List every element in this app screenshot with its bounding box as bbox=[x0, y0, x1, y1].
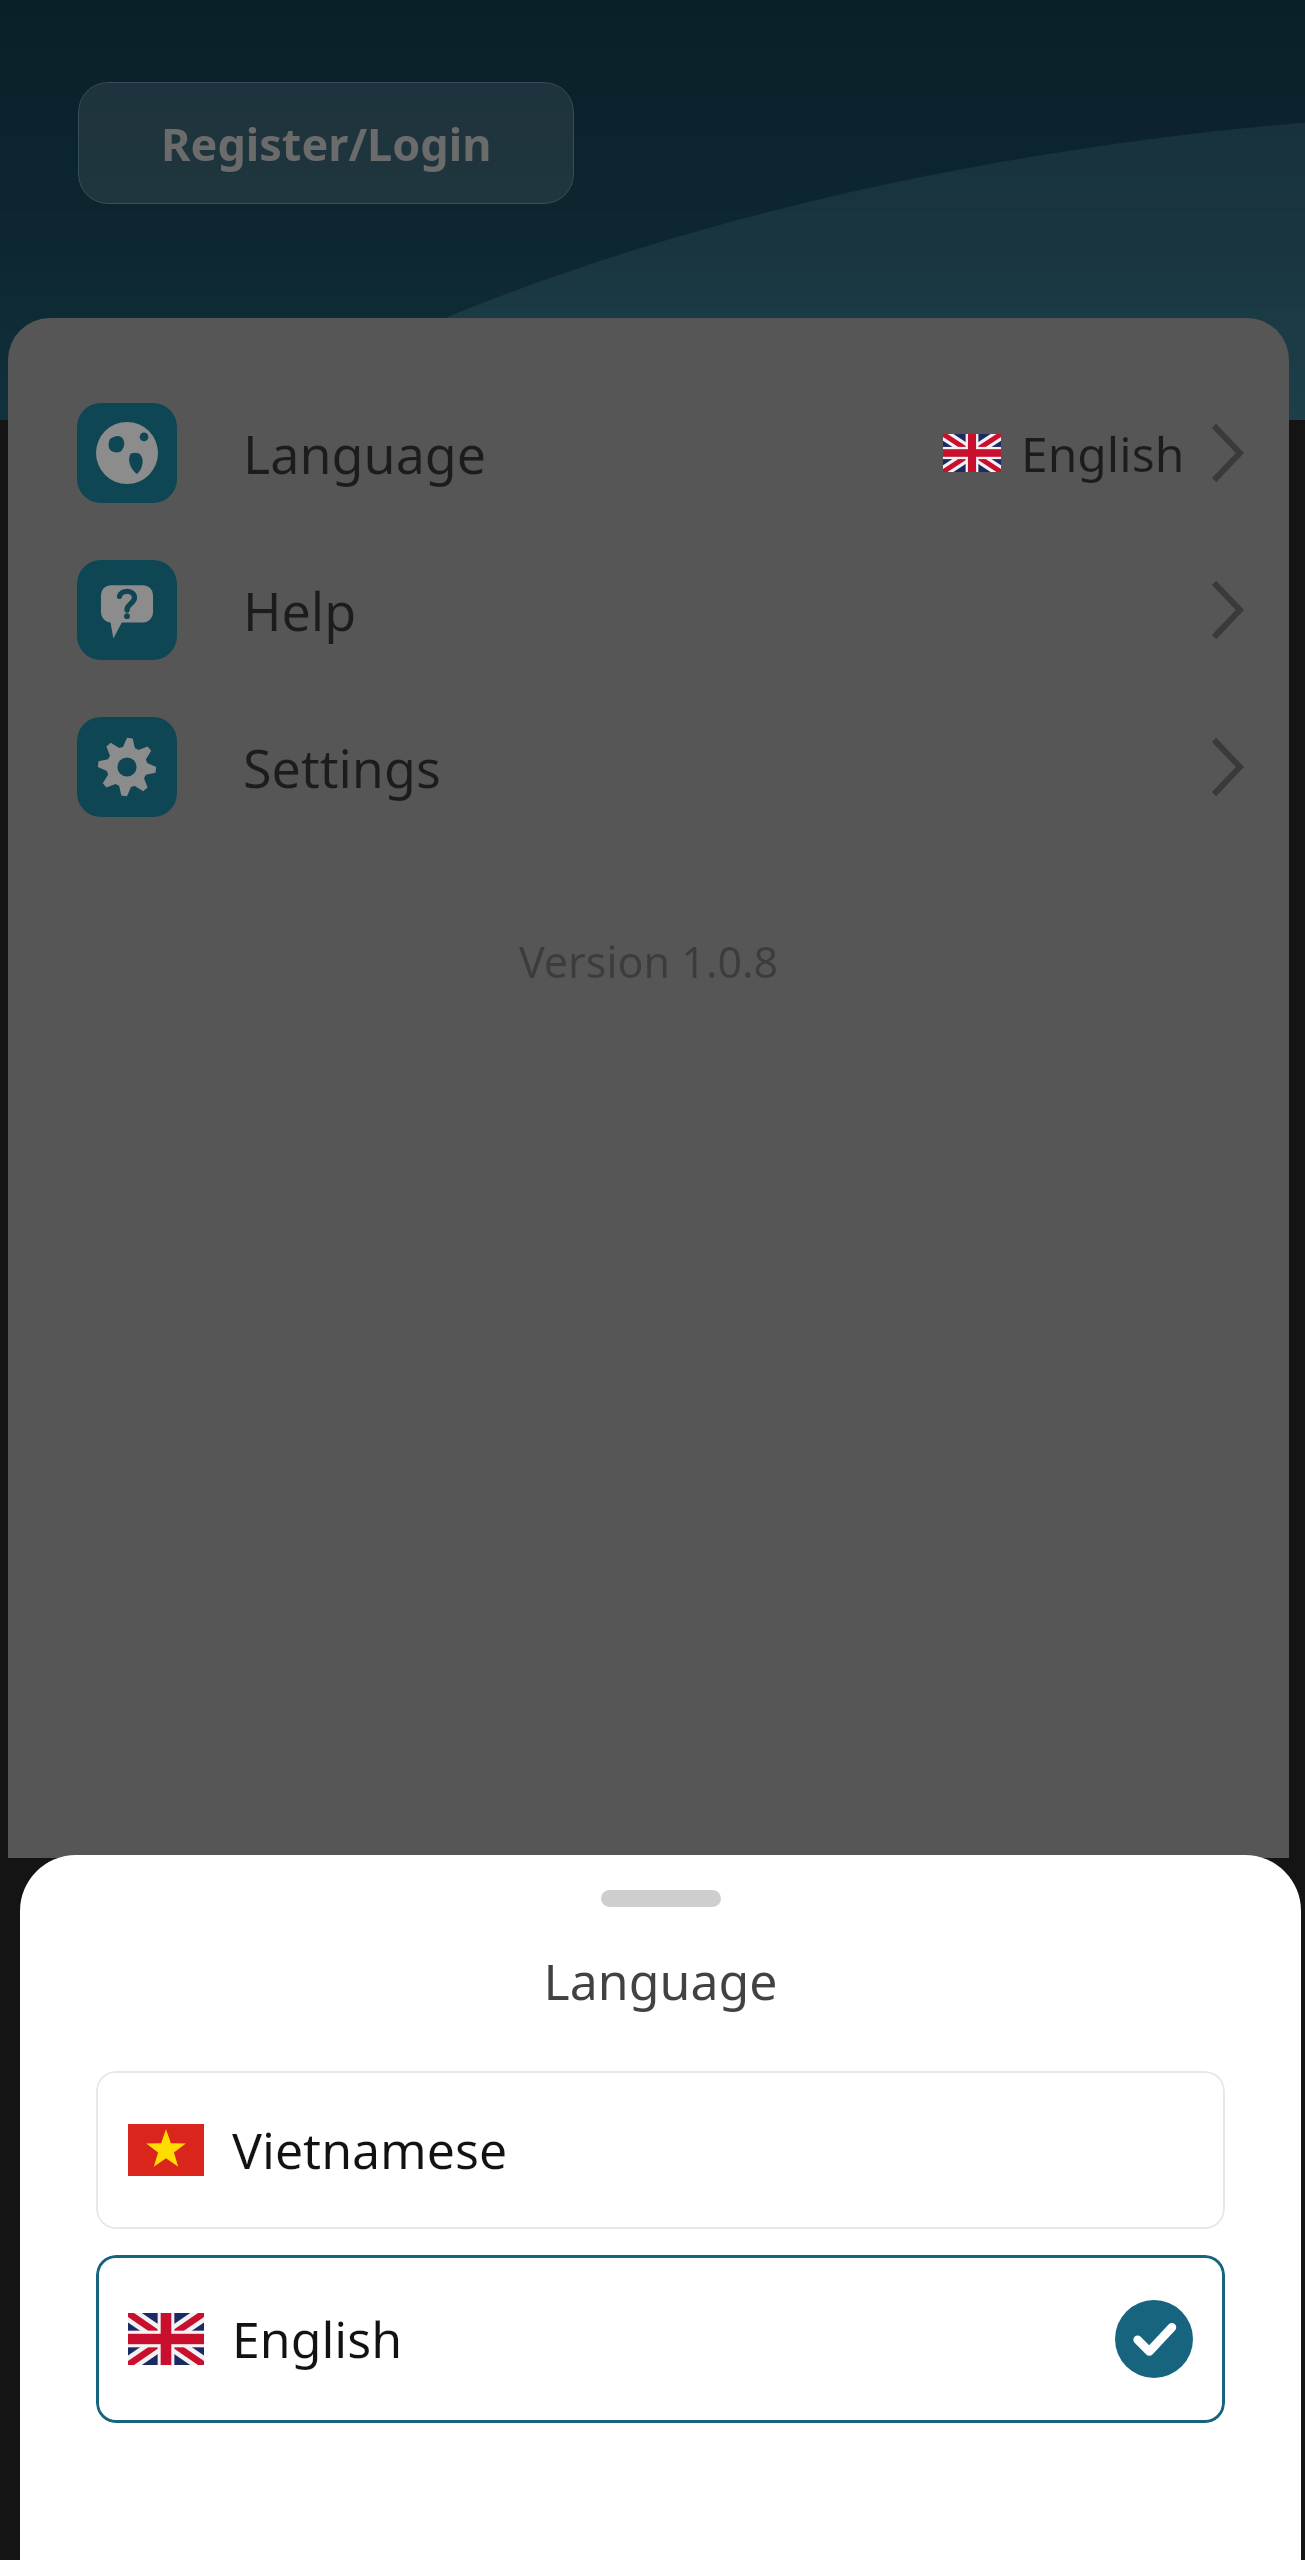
button[interactable]: Help bbox=[8, 560, 1289, 660]
staticText: Version 1.0.8 bbox=[8, 932, 1289, 991]
staticText: Language bbox=[243, 418, 487, 489]
staticText: English bbox=[1021, 421, 1185, 486]
button[interactable]: Settings bbox=[8, 717, 1289, 817]
button[interactable]: Register/Login bbox=[78, 82, 574, 204]
staticText: Language bbox=[20, 1947, 1301, 2015]
button[interactable]: Language bbox=[8, 403, 1289, 503]
button[interactable]: English bbox=[96, 2255, 1225, 2423]
staticText: Register/Login bbox=[161, 113, 492, 174]
staticText: Vietnamese bbox=[232, 2116, 508, 2184]
staticText: English bbox=[232, 2305, 403, 2373]
staticText: Settings bbox=[243, 732, 441, 803]
staticText: Help bbox=[243, 575, 357, 646]
button[interactable]: Vietnamese bbox=[96, 2071, 1225, 2229]
